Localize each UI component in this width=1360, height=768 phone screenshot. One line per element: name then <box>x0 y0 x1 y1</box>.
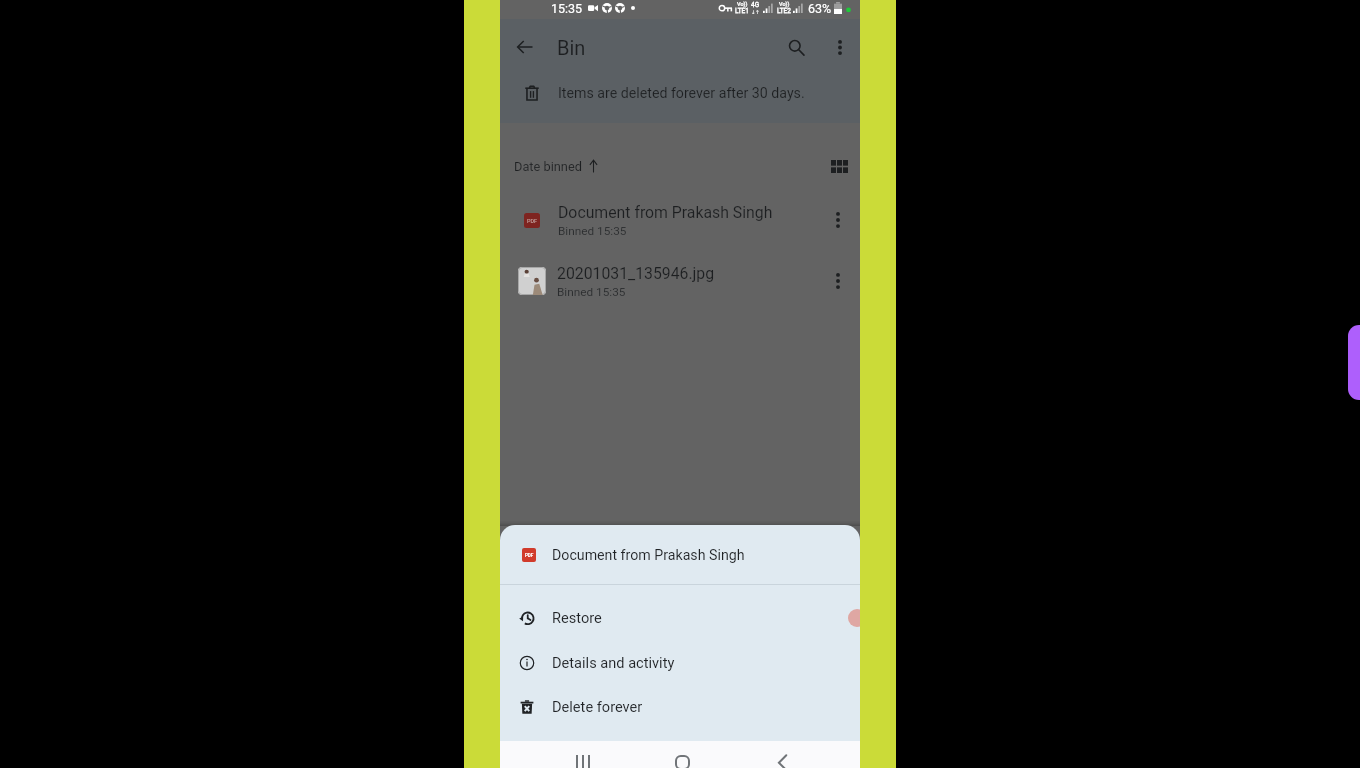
button[interactable]: PDF <box>500 192 860 248</box>
staticText: Details and activity <box>552 654 675 671</box>
staticText: Delete forever <box>552 698 643 715</box>
button[interactable]: Details and activity <box>500 640 860 685</box>
button[interactable]: Recent apps <box>562 741 602 768</box>
staticText: Binned 15:35 <box>558 224 627 238</box>
staticText: LTE1 <box>735 7 749 15</box>
button[interactable]: Back <box>762 741 802 768</box>
button[interactable]: More options <box>820 263 856 299</box>
button[interactable]: PDF <box>500 525 860 585</box>
button[interactable]: Navigate up <box>500 19 550 75</box>
button[interactable]: More options <box>820 202 856 238</box>
staticText: Document from Prakash Singh <box>552 547 745 564</box>
staticText: Items are deleted forever after 30 days. <box>558 85 805 102</box>
staticText: ↓↑ <box>751 9 760 15</box>
staticText: Vo)) <box>779 1 790 7</box>
staticText: Vo)) <box>737 1 748 7</box>
button[interactable]: Switch to grid view <box>824 146 854 186</box>
staticText: Binned 15:35 <box>557 285 626 299</box>
staticText: Date binned <box>514 159 582 174</box>
button[interactable]: Delete forever <box>500 684 860 729</box>
staticText: PDF <box>527 218 538 224</box>
button[interactable]: Restore <box>500 595 860 640</box>
staticText: Bin <box>557 36 586 59</box>
staticText: PDF <box>525 553 534 558</box>
button[interactable]: Date binned <box>514 142 598 190</box>
button[interactable]: Home <box>662 741 702 768</box>
staticText: 15:35 <box>551 1 583 16</box>
button[interactable]: Search <box>772 19 820 75</box>
staticText: LTE2 <box>777 7 791 15</box>
button[interactable]: 20201031_135946.jpg <box>500 253 860 309</box>
staticText: 4G <box>751 1 760 9</box>
staticText: Restore <box>552 609 602 626</box>
staticText: 20201031_135946.jpg <box>557 264 715 283</box>
staticText: 63% <box>808 1 832 16</box>
staticText: Document from Prakash Singh <box>558 203 773 222</box>
button[interactable]: More options <box>820 19 860 75</box>
